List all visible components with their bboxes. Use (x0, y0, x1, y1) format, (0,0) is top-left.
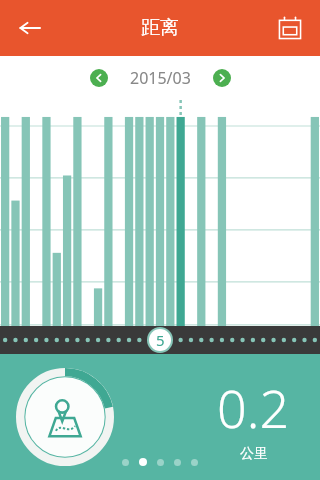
button[interactable]: Previous month (90, 69, 108, 87)
staticText: 2015/03 (130, 67, 191, 89)
staticText: 5 (156, 330, 165, 350)
button[interactable]: Distance (16, 368, 114, 466)
button[interactable]: Back (8, 6, 52, 50)
button[interactable]: 5 (149, 329, 171, 351)
button[interactable]: Page 3 (157, 459, 164, 466)
button[interactable]: Page 2 (139, 458, 147, 466)
button[interactable]: Next month (213, 69, 231, 87)
button[interactable]: Page 5 (191, 459, 198, 466)
staticText: 公里 (240, 445, 268, 463)
staticText: 0.2 (217, 372, 290, 443)
staticText: 距离 (141, 16, 179, 40)
button[interactable]: Page 4 (174, 459, 181, 466)
button[interactable]: Page 1 (122, 459, 129, 466)
button[interactable]: Calendar (268, 6, 312, 50)
